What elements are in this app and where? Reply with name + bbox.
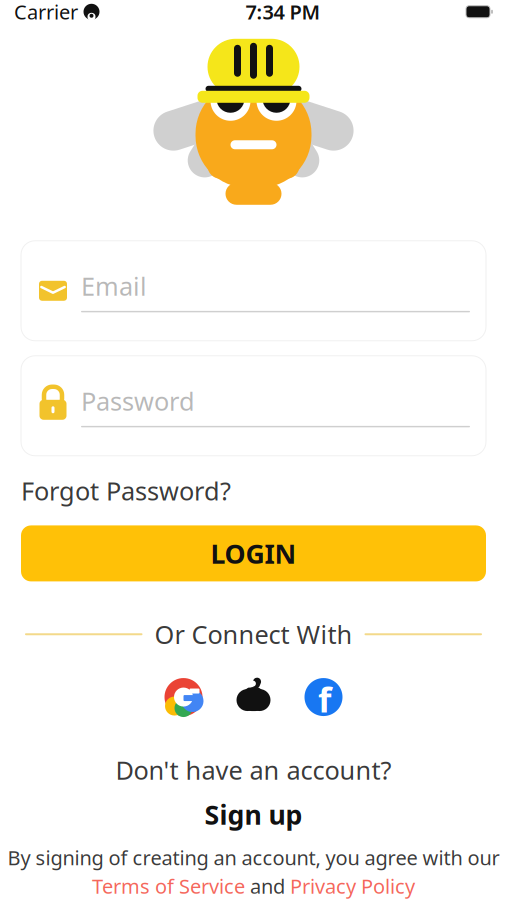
staticText: f [318,676,331,722]
staticText: Forgot Password? [21,474,231,507]
staticText: 7:34 PM [245,0,320,25]
staticText: LOGIN [210,536,296,571]
staticText: Sign up [204,797,302,832]
button[interactable]: LOGIN [21,525,486,581]
button[interactable]: Sign up [190,793,316,836]
staticText: and [250,873,285,899]
staticText: Don't have an account? [115,753,391,787]
button[interactable]: Privacy Policy [290,873,415,899]
button[interactable]: Sign in with Apple [234,677,272,717]
staticText: Carrier [14,0,78,25]
staticText: Or Connect With [154,617,352,651]
button[interactable]: Sign in with Facebook [304,678,342,716]
staticText: Email [81,269,147,303]
staticText: Terms of Service [92,873,245,899]
staticText: Privacy Policy [290,873,415,899]
staticText: Password [81,384,195,418]
button[interactable]: Forgot Password? [0,456,507,513]
button[interactable]: Sign in with Google [164,678,202,716]
button[interactable]: Terms of Service [92,873,245,899]
staticText: By signing of creating an account, you a… [7,844,499,871]
